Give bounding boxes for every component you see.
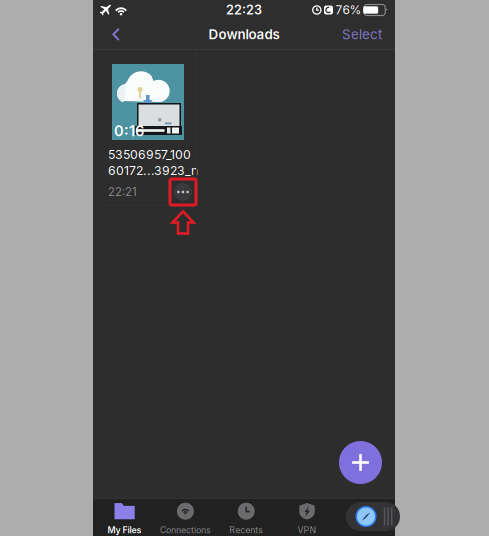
staticText: Recents xyxy=(229,525,263,535)
button[interactable]: Add xyxy=(339,441,382,484)
staticText: Downloads xyxy=(208,26,279,42)
button[interactable]: My Files xyxy=(94,498,155,536)
button[interactable]: Select xyxy=(342,20,382,49)
staticText: 0:16 xyxy=(114,122,144,140)
staticText: 60172...3923_n xyxy=(108,163,198,178)
button[interactable]: Back xyxy=(102,20,130,49)
button[interactable]: Safari xyxy=(346,502,400,531)
button[interactable]: Recents xyxy=(216,498,277,536)
staticText: 53506957_100 xyxy=(108,147,191,162)
staticText: 22:23 xyxy=(226,2,262,18)
button[interactable]: Connections xyxy=(155,498,216,536)
button[interactable]: VPN xyxy=(277,498,337,536)
staticText: 76% xyxy=(336,3,362,17)
staticText: Select xyxy=(342,26,382,42)
staticText: 22:21 xyxy=(108,185,137,199)
staticText: My Files xyxy=(108,525,142,535)
staticText: VPN xyxy=(297,525,316,535)
staticText: Connections xyxy=(160,525,211,535)
button[interactable]: More options xyxy=(170,179,196,205)
